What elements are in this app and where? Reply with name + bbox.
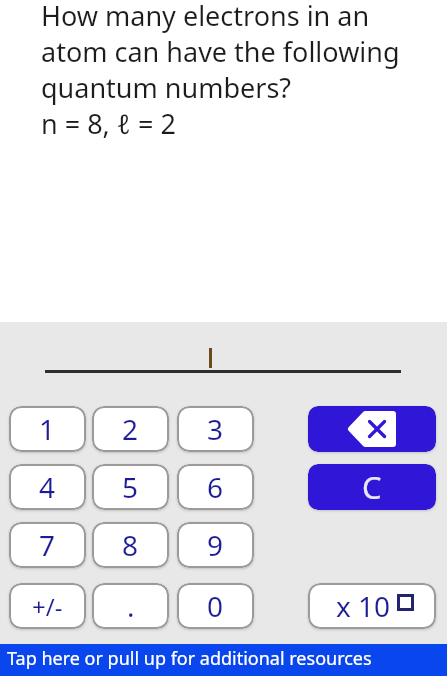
staticText: . [127,587,135,625]
staticText: 0 [207,587,224,625]
staticText: 5 [122,468,139,506]
staticText: 9 [207,526,224,564]
button[interactable]: 0 [177,583,254,629]
staticText: 1 [39,410,56,448]
button[interactable]: 8 [92,522,169,568]
button[interactable]: 6 [177,464,254,510]
button[interactable] [308,406,436,452]
staticText: 7 [39,526,56,564]
button[interactable]: 3 [177,406,254,452]
button[interactable]: 4 [9,464,86,510]
button[interactable]: C [308,464,436,510]
button[interactable]: 5 [92,464,169,510]
staticText: 3 [207,410,224,448]
staticText: 2 [122,410,139,448]
staticText: x 10 [336,587,391,625]
staticText: C [362,466,382,508]
button[interactable]: Tap here or pull up for additional resou… [0,644,447,676]
button[interactable]: 2 [92,406,169,452]
button[interactable]: 9 [177,522,254,568]
staticText: 4 [39,468,56,506]
button[interactable]: 7 [9,522,86,568]
button[interactable]: x 10 [308,583,436,629]
staticText: +/- [32,590,63,623]
staticText: 8 [122,526,139,564]
staticText: How many electrons in an atom can have t… [41,0,400,142]
button[interactable]: +/- [9,583,86,629]
button[interactable]: 1 [9,406,86,452]
staticText: Tap here or pull up for additional resou… [7,646,372,671]
staticText: 6 [207,468,224,506]
button[interactable]: . [92,583,169,629]
